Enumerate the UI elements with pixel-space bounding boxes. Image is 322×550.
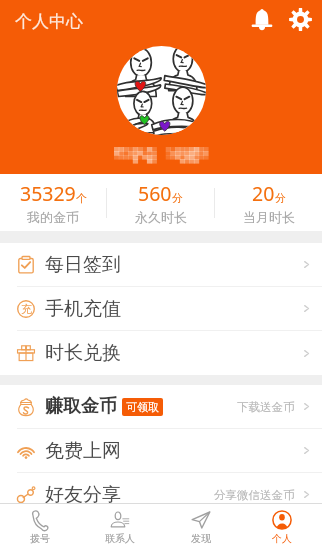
- staticText: 好友分享: [45, 483, 121, 507]
- staticText: 个人中心: [15, 11, 83, 32]
- button[interactable]: Settings: [285, 4, 316, 35]
- staticText: 下载送金币: [237, 400, 295, 414]
- staticText: 分: [172, 191, 183, 205]
- staticText: 35329: [20, 180, 76, 207]
- staticText: 个人: [272, 532, 292, 545]
- button[interactable]: 每日签到: [0, 243, 322, 287]
- staticText: 免费上网: [45, 439, 121, 463]
- button[interactable]: 充: [0, 287, 322, 331]
- button[interactable]: 免费上网: [0, 429, 322, 473]
- staticText: 560: [138, 180, 172, 207]
- staticText: 每日签到: [45, 253, 121, 277]
- button[interactable]: 个人: [241, 504, 322, 550]
- button[interactable]: 好友分享: [0, 473, 322, 517]
- staticText: 我的金币: [27, 209, 79, 225]
- button[interactable]: Notifications: [246, 4, 277, 35]
- staticText: 拨号: [30, 532, 50, 545]
- staticText: 当月时长: [243, 209, 295, 225]
- button[interactable]: 赚取金币: [0, 385, 322, 429]
- staticText: 联系人: [105, 532, 135, 545]
- staticText: 赚取金币: [45, 395, 117, 418]
- staticText: 个: [76, 191, 87, 205]
- staticText: 充: [21, 302, 32, 316]
- staticText: 手机充值: [45, 297, 121, 321]
- staticText: 时长兑换: [45, 341, 121, 365]
- staticText: 分享微信送金币: [214, 488, 295, 502]
- button[interactable]: 20: [215, 174, 322, 231]
- staticText: 发现: [191, 532, 211, 545]
- staticText: 永久时长: [135, 209, 187, 225]
- button[interactable]: 时长兑换: [0, 331, 322, 375]
- button[interactable]: 联系人: [80, 504, 160, 550]
- button[interactable]: 拨号: [0, 504, 80, 550]
- button[interactable]: 560: [107, 174, 214, 231]
- button[interactable]: 发现: [160, 504, 241, 550]
- button[interactable]: Profile avatar: [117, 46, 206, 135]
- button[interactable]: 35329: [0, 174, 106, 231]
- staticText: 分: [275, 191, 286, 205]
- staticText: 可领取: [126, 400, 159, 414]
- staticText: 20: [252, 180, 275, 207]
